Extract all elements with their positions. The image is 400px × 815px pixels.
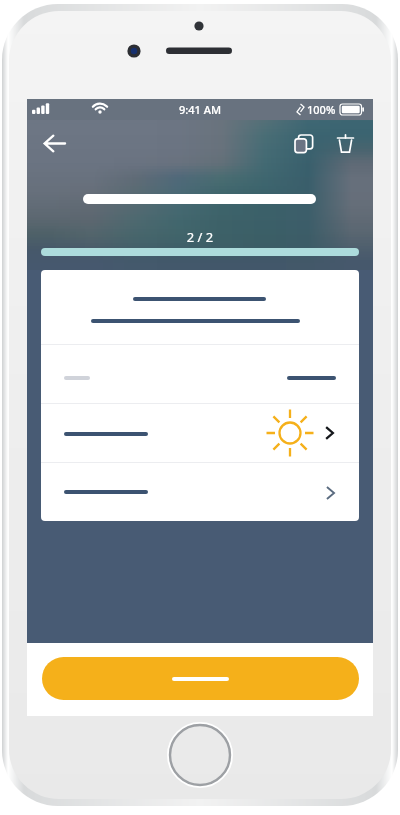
button[interactable] — [41, 345, 359, 403]
button[interactable]: Duplicate — [282, 122, 324, 164]
button[interactable] — [41, 404, 359, 462]
staticText: 9:41 AM — [179, 102, 222, 117]
button[interactable] — [42, 657, 359, 700]
button[interactable]: Back — [33, 122, 75, 164]
button[interactable] — [41, 270, 359, 344]
button[interactable]: Delete — [324, 122, 366, 164]
staticText: 100% — [307, 102, 336, 117]
staticText: 2 / 2 — [27, 228, 373, 246]
button[interactable] — [41, 463, 359, 521]
